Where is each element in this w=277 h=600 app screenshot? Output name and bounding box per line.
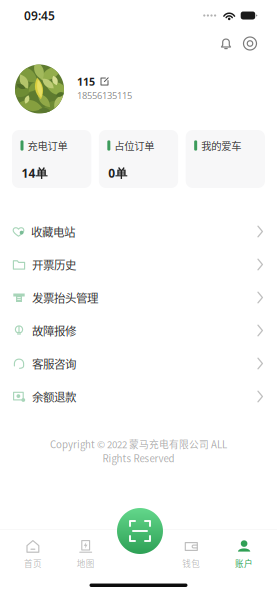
- staticText: 09:45: [24, 7, 55, 23]
- staticText: 收藏电站: [31, 223, 75, 240]
- button[interactable]: 我的爱车: [186, 130, 265, 188]
- staticText: 115: [77, 74, 95, 89]
- button[interactable]: Edit profile: [100, 77, 109, 86]
- button[interactable]: 账户: [218, 539, 270, 569]
- button[interactable]: 发票抬头管理: [0, 281, 277, 314]
- button[interactable]: 故障报修: [0, 314, 277, 347]
- staticText: 故障报修: [32, 322, 76, 339]
- button[interactable]: 开票历史: [0, 248, 277, 281]
- button[interactable]: Scan: [117, 508, 163, 554]
- staticText: 账户: [235, 557, 253, 569]
- staticText: 余额退款: [32, 388, 76, 405]
- staticText: 首页: [24, 557, 42, 569]
- staticText: 我的爱车: [201, 138, 241, 153]
- staticText: 发票抬头管理: [32, 289, 98, 306]
- button[interactable]: 余额退款: [0, 380, 277, 413]
- staticText: 地图: [77, 557, 95, 569]
- button[interactable]: 占位订单: [99, 130, 178, 188]
- button[interactable]: Settings: [240, 33, 260, 53]
- button[interactable]: 钱包: [165, 539, 218, 569]
- staticText: 充电订单: [27, 138, 67, 153]
- staticText: 占位订单: [114, 138, 154, 153]
- staticText: 开票历史: [32, 256, 76, 273]
- button[interactable]: 充电订单: [12, 130, 91, 188]
- staticText: 0单: [108, 165, 127, 181]
- staticText: 钱包: [182, 557, 200, 569]
- button[interactable]: 客服咨询: [0, 347, 277, 380]
- staticText: Rights Reserved: [102, 451, 174, 465]
- button[interactable]: 地图: [59, 539, 112, 569]
- button[interactable]: Profile photo: [15, 64, 64, 113]
- staticText: Copyright © 2022 蒙马充电有限公司 ALL: [50, 437, 227, 451]
- button[interactable]: Notifications: [216, 33, 236, 53]
- staticText: 客服咨询: [32, 355, 76, 372]
- button[interactable]: 收藏电站: [0, 215, 277, 248]
- button[interactable]: 首页: [6, 539, 59, 569]
- staticText: 14单: [21, 165, 47, 181]
- staticText: 18556135115: [77, 89, 132, 102]
